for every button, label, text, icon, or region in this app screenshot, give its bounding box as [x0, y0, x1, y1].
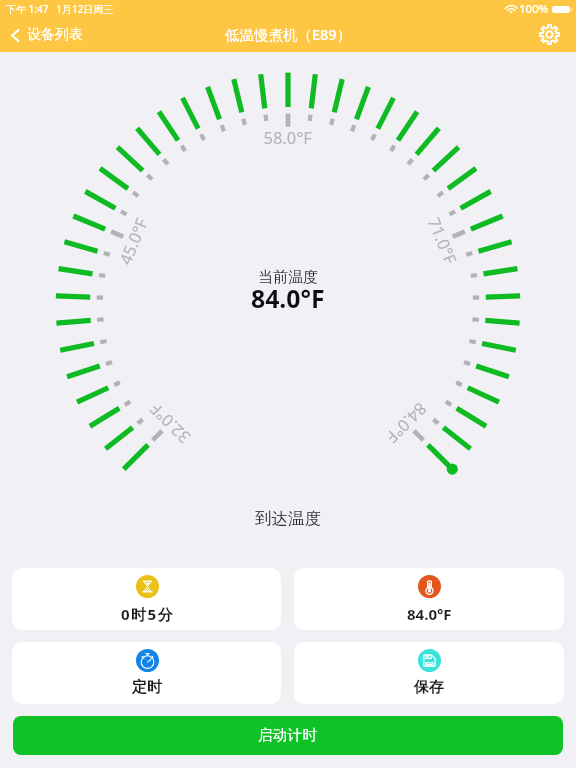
button[interactable]: 设备列表 — [0, 22, 93, 48]
staticText: 100% — [519, 1, 549, 17]
button[interactable]: 定时 — [12, 642, 281, 704]
staticText: 定时 — [132, 678, 162, 697]
staticText: 0 时 5 分 — [121, 604, 173, 624]
staticText: 设备列表 — [27, 26, 83, 44]
button[interactable]: Settings — [539, 24, 560, 45]
staticText: 低温慢煮机（E89） — [225, 24, 352, 44]
staticText: 启动计时 — [258, 726, 318, 745]
button[interactable]: 保存 — [294, 642, 564, 704]
staticText: 84.0°F — [407, 604, 452, 624]
button[interactable]: 0 时 5 分 — [12, 568, 281, 630]
button[interactable]: 84.0°F — [294, 568, 564, 630]
staticText: 保存 — [414, 678, 444, 697]
button[interactable]: 启动计时 — [13, 716, 563, 755]
staticText: 下午 1:47 1月12日周三 — [6, 2, 114, 16]
